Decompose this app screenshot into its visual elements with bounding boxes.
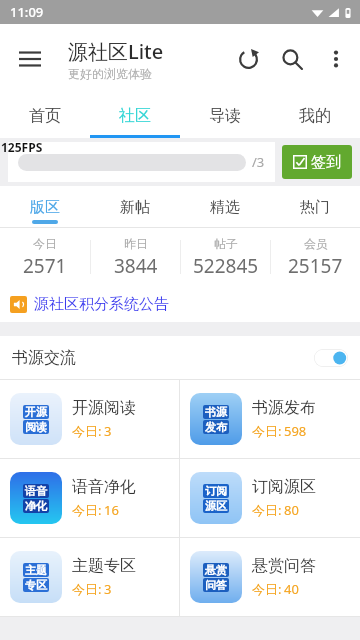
staticText: 125FPS	[1, 139, 43, 155]
staticText: 社区	[119, 106, 151, 126]
staticText: 今日:	[252, 580, 282, 598]
staticText: 3844	[114, 253, 158, 279]
staticText: 首页	[29, 106, 61, 126]
staticText: 今日:	[252, 422, 282, 440]
staticText: 订阅源区	[252, 477, 316, 497]
button[interactable]: 订阅	[180, 459, 360, 537]
staticText: 今日	[33, 236, 57, 251]
button[interactable]: 签到	[282, 145, 352, 179]
staticText: 80	[284, 501, 299, 519]
button[interactable]: Refresh	[226, 37, 270, 81]
staticText: 书源发布	[252, 398, 316, 418]
button[interactable]: 精选	[180, 186, 270, 228]
button[interactable]: 版区	[0, 186, 90, 228]
staticText: 发布	[205, 420, 227, 434]
staticText: /3	[252, 153, 265, 171]
button[interactable]: Search	[270, 37, 314, 81]
staticText: 书源交流	[12, 348, 76, 368]
button[interactable]: More options	[314, 37, 358, 81]
staticText: 16	[104, 501, 119, 519]
staticText: 2571	[23, 253, 67, 279]
staticText: 598	[284, 422, 307, 440]
staticText: 会员	[304, 236, 328, 251]
staticText: 语音	[25, 484, 47, 498]
staticText: 精选	[210, 198, 240, 217]
staticText: 新帖	[120, 198, 150, 217]
button[interactable]: 书源	[180, 380, 360, 458]
staticText: 3	[104, 580, 112, 598]
staticText: 阅读	[25, 420, 47, 434]
staticText: 热门	[300, 198, 330, 217]
staticText: 悬赏	[205, 563, 227, 577]
staticText: 专区	[25, 578, 47, 592]
staticText: 昨日	[124, 236, 148, 251]
staticText: 更好的浏览体验	[68, 66, 152, 81]
staticText: 今日:	[72, 501, 102, 519]
staticText: 签到	[311, 153, 341, 172]
button[interactable]: 首页	[0, 94, 90, 138]
staticText: 25157	[288, 253, 343, 279]
button[interactable]: 语音	[0, 459, 180, 537]
staticText: 帖子	[214, 236, 238, 251]
button[interactable]: 悬赏	[180, 538, 360, 616]
button[interactable]: 源社区积分系统公告	[0, 286, 360, 322]
staticText: 源社区Lite	[68, 38, 164, 65]
staticText: 今日:	[72, 580, 102, 598]
button[interactable]: Toggle 书源交流	[314, 349, 348, 367]
staticText: 净化	[25, 499, 47, 513]
staticText: 导读	[209, 106, 241, 126]
button[interactable]: 新帖	[90, 186, 180, 228]
staticText: 开源	[25, 405, 47, 419]
button[interactable]: 开源	[0, 380, 180, 458]
staticText: 11:09	[10, 3, 44, 21]
staticText: 源区	[205, 499, 227, 513]
staticText: 今日:	[252, 501, 282, 519]
staticText: 悬赏问答	[252, 556, 316, 576]
staticText: 我的	[299, 106, 331, 126]
staticText: 522845	[193, 253, 259, 279]
staticText: 书源	[205, 405, 227, 419]
staticText: 语音净化	[72, 477, 136, 497]
button[interactable]: 我的	[270, 94, 360, 138]
staticText: 今日:	[72, 422, 102, 440]
staticText: 主题	[25, 563, 47, 577]
button[interactable]: 热门	[270, 186, 360, 228]
button[interactable]: 社区	[90, 94, 180, 138]
button[interactable]: 主题	[0, 538, 180, 616]
staticText: 订阅	[205, 484, 227, 498]
staticText: 问答	[205, 578, 227, 592]
staticText: 40	[284, 580, 299, 598]
staticText: 开源阅读	[72, 398, 136, 418]
staticText: 主题专区	[72, 556, 136, 576]
button[interactable]: 导读	[180, 94, 270, 138]
staticText: 3	[104, 422, 112, 440]
button[interactable]: Menu	[8, 37, 52, 81]
staticText: 版区	[30, 198, 60, 217]
staticText: 源社区积分系统公告	[34, 295, 169, 314]
